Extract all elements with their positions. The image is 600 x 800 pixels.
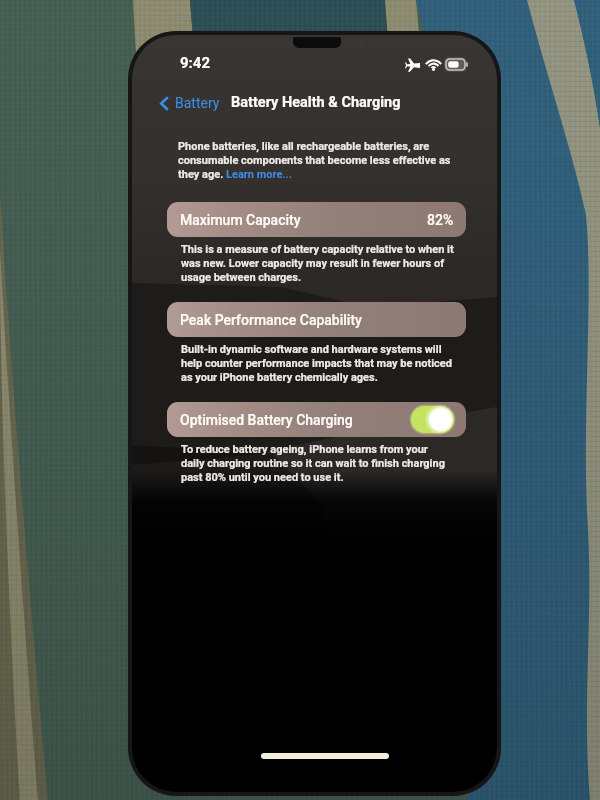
- staticText: Phone batteries, like all rechargeable b…: [178, 140, 451, 181]
- button[interactable]: Optimised Battery Charging: [167, 402, 466, 437]
- staticText: To reduce battery ageing, iPhone learns …: [181, 443, 454, 484]
- staticText: 9:42: [180, 54, 211, 72]
- staticText: 82%: [427, 212, 454, 228]
- staticText: Battery: [175, 95, 220, 111]
- staticText: Maximum Capacity: [180, 212, 301, 228]
- staticText: Peak Performance Capability: [180, 312, 362, 328]
- button[interactable]: Peak Performance Capability: [167, 302, 466, 337]
- staticText: Optimised Battery Charging: [180, 412, 353, 428]
- button[interactable]: Battery: [158, 91, 226, 115]
- button[interactable]: Maximum Capacity: [167, 202, 466, 237]
- staticText: Battery Health & Charging: [231, 94, 401, 111]
- staticText: This is a measure of battery capacity re…: [181, 243, 454, 284]
- button[interactable]: Optimised Battery Charging toggle: [411, 406, 454, 433]
- staticText: Built-in dynamic software and hardware s…: [181, 343, 454, 384]
